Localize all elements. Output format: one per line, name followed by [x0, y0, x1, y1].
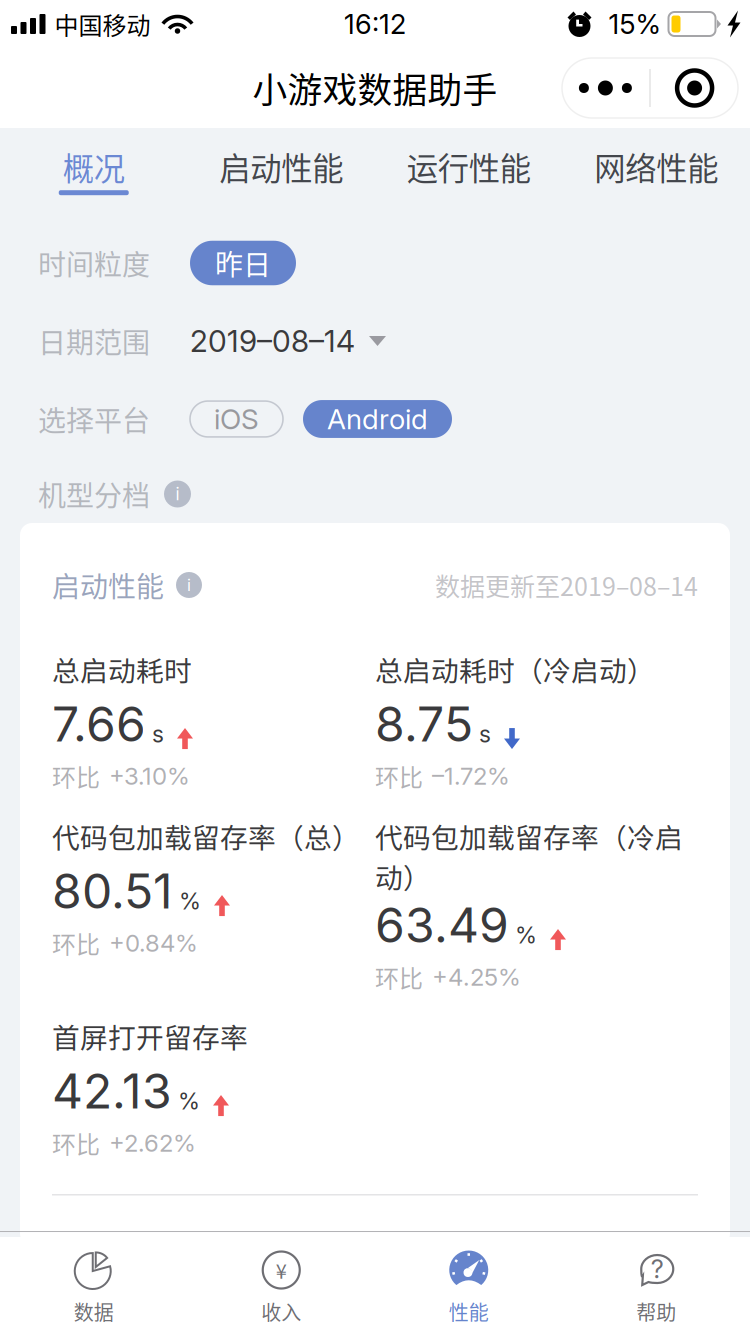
staticText: 概况: [63, 144, 125, 189]
button[interactable]: 启动性能: [187, 133, 375, 209]
staticText: 时间粒度: [38, 243, 150, 283]
staticText: %: [515, 921, 537, 949]
button[interactable]: 数据: [0, 1232, 187, 1334]
button[interactable]: 性能: [375, 1232, 562, 1334]
staticText: 中国移动: [54, 7, 150, 41]
staticText: i: [187, 575, 191, 595]
staticText: s: [152, 720, 164, 748]
staticText: 选择平台: [38, 399, 150, 439]
staticText: 日期范围: [38, 321, 150, 361]
staticText: s: [479, 720, 491, 748]
button[interactable]: ¥: [187, 1232, 375, 1334]
staticText: iOS: [214, 402, 259, 436]
staticText: 7.66: [52, 695, 146, 753]
staticText: 首屏打开留存率: [52, 1016, 248, 1056]
staticText: 帮助: [636, 1297, 676, 1326]
button[interactable]: ?: [562, 1232, 750, 1334]
staticText: 启动性能: [52, 565, 164, 605]
staticText: +2.62%: [109, 1128, 196, 1157]
staticText: 16:12: [344, 7, 406, 41]
button[interactable]: 2019–08–14: [190, 323, 386, 359]
staticText: %: [179, 887, 201, 915]
staticText: 环比: [52, 1126, 100, 1160]
staticText: 63.49: [375, 896, 509, 954]
staticText: +3.10%: [109, 761, 190, 790]
staticText: 网络性能: [594, 144, 718, 189]
staticText: 数据: [74, 1297, 114, 1326]
staticText: 性能: [449, 1297, 489, 1326]
staticText: %: [178, 1087, 200, 1115]
staticText: 代码包加载留存率（总）: [52, 816, 360, 856]
staticText: 环比: [52, 926, 100, 960]
staticText: 机型分档: [38, 474, 150, 514]
staticText: 15%: [608, 7, 660, 41]
staticText: +0.84%: [109, 928, 198, 957]
staticText: 42.13: [52, 1062, 172, 1120]
button[interactable]: iOS: [190, 401, 283, 437]
staticText: ?: [651, 1254, 664, 1284]
staticText: 2019–08–14: [190, 323, 355, 359]
staticText: 总启动耗时: [52, 649, 192, 689]
staticText: Android: [327, 402, 428, 436]
staticText: 代码包加载留存率（冷启动）: [375, 816, 683, 896]
staticText: 总启动耗时（冷启动）: [375, 649, 655, 689]
button[interactable]: 概况: [0, 133, 187, 209]
staticText: 收入: [261, 1297, 301, 1326]
staticText: 环比: [375, 759, 423, 793]
staticText: i: [175, 484, 179, 504]
staticText: 数据更新至2019–08–14: [435, 567, 698, 603]
staticText: 环比: [375, 960, 423, 994]
staticText: 环比: [52, 759, 100, 793]
staticText: 昨日: [215, 243, 271, 283]
button[interactable]: 网络性能: [562, 133, 750, 209]
staticText: 启动性能: [219, 144, 343, 189]
staticText: 8.75: [375, 695, 473, 753]
staticText: ¥: [276, 1255, 287, 1284]
staticText: –1.72%: [432, 761, 510, 790]
staticText: 80.51: [52, 862, 173, 920]
staticText: 运行性能: [407, 144, 531, 189]
staticText: +4.25%: [432, 962, 521, 991]
button[interactable]: Android: [303, 400, 452, 438]
staticText: 小游戏数据助手: [252, 63, 497, 113]
button[interactable]: 运行性能: [375, 133, 562, 209]
button[interactable]: 昨日: [190, 241, 296, 285]
button[interactable]: More options and close: [562, 58, 738, 118]
